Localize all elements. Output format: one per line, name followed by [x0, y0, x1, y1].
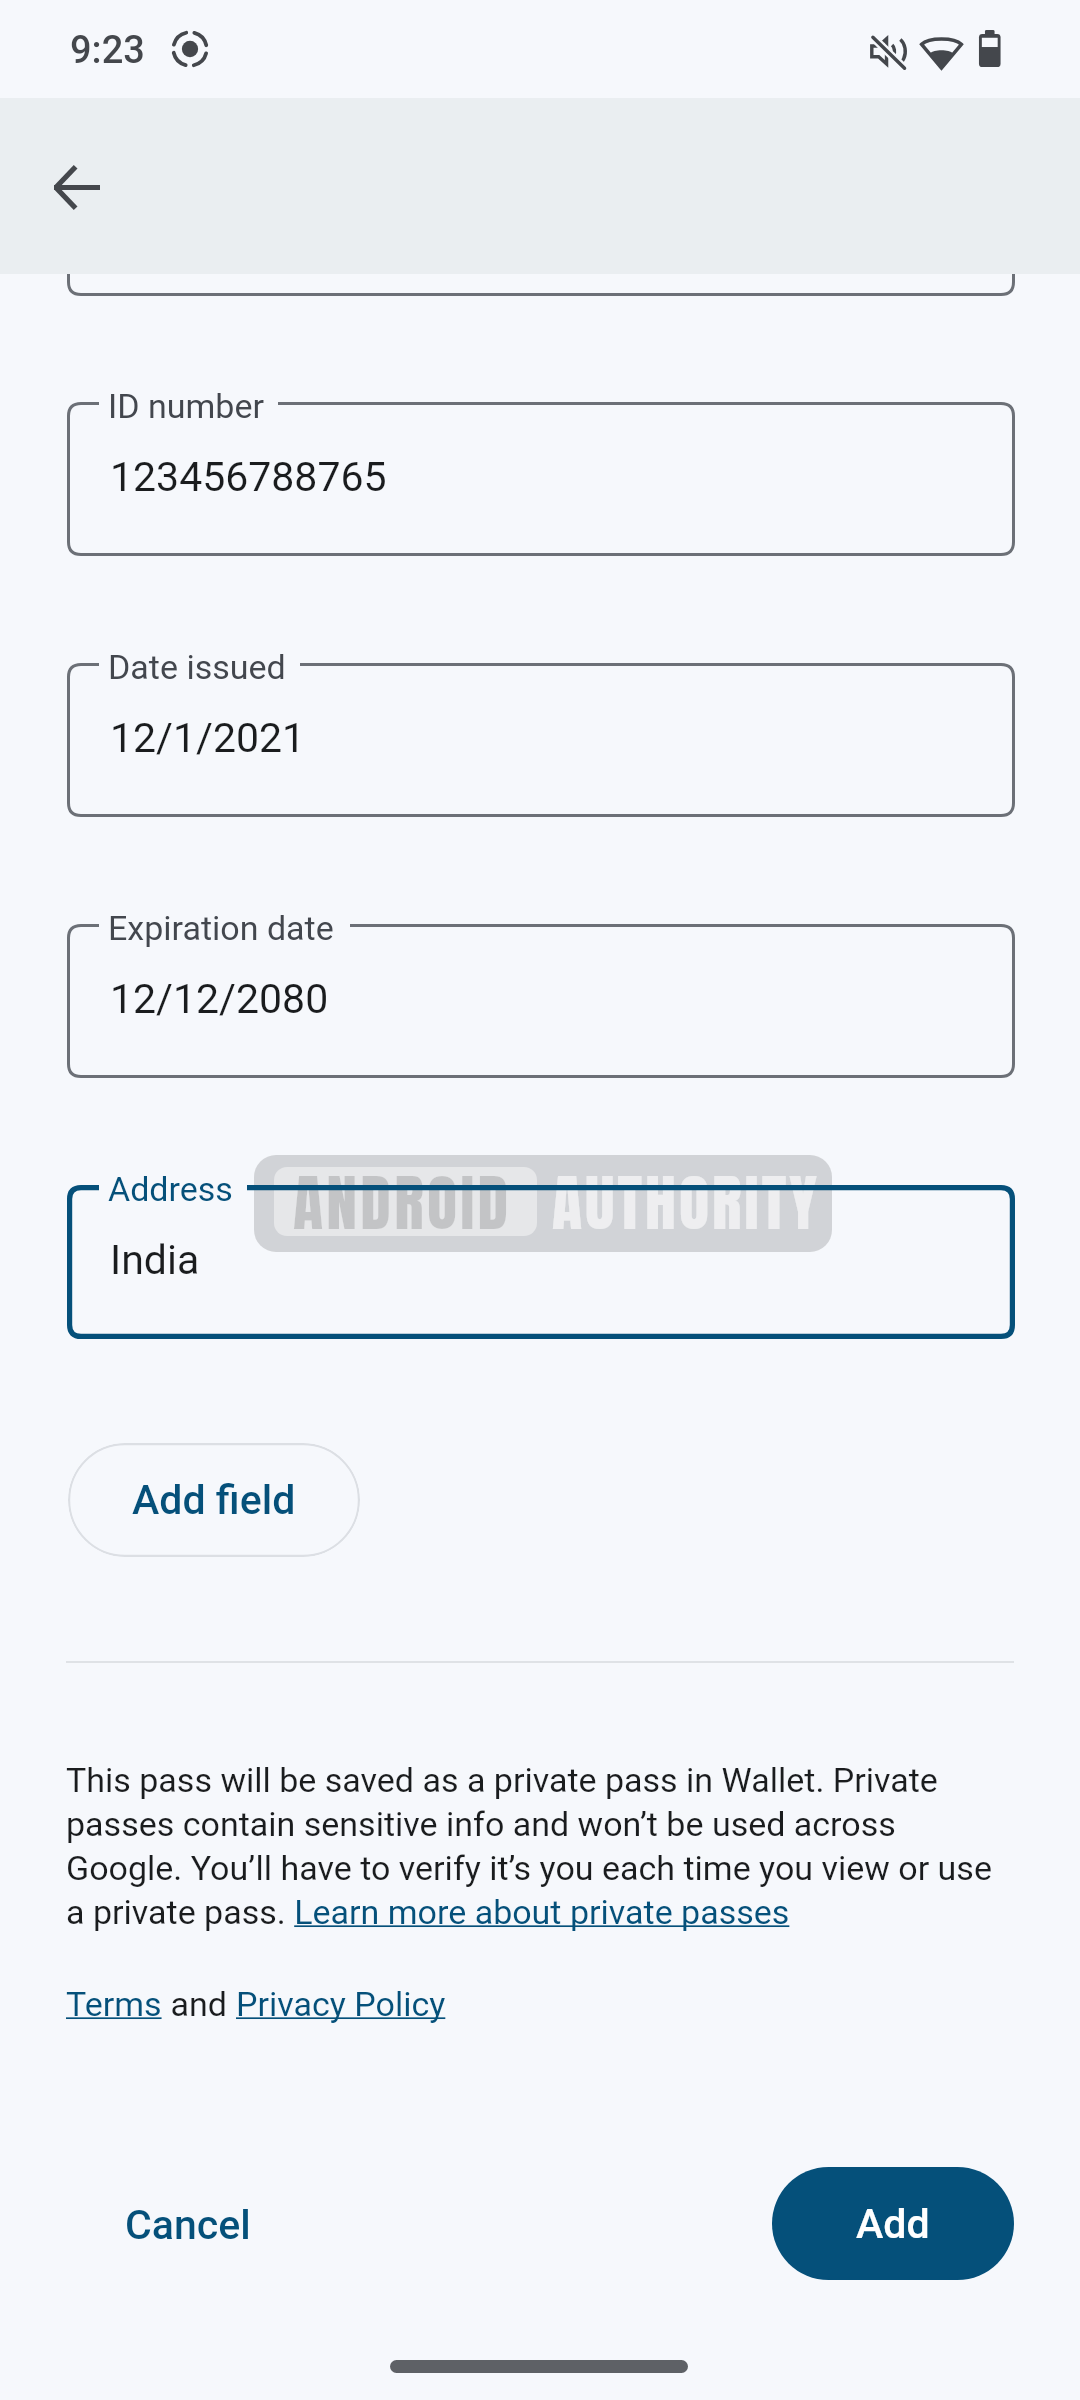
button[interactable]: Learn more about private passes [289, 1892, 794, 1938]
staticText: Add field [132, 1476, 296, 1524]
staticText: Terms [66, 1984, 162, 2024]
staticText: Expiration date [108, 908, 334, 948]
button[interactable]: Date issued [67, 663, 1015, 817]
button[interactable]: Cancel [100, 2168, 275, 2281]
staticText: ANDROID [293, 1156, 512, 1249]
button[interactable]: Back [22, 132, 132, 242]
staticText: and [162, 1984, 236, 2024]
staticText: 12/12/2080 [110, 975, 329, 1023]
button[interactable]: Add field [68, 1443, 360, 1557]
staticText: Address [108, 1169, 233, 1209]
button[interactable]: Terms [66, 1984, 162, 2024]
staticText: This pass will be saved as a private pas… [66, 1760, 1006, 1932]
staticText: Cancel [125, 2201, 251, 2249]
staticText: Add [856, 2200, 930, 2248]
button[interactable]: Add [772, 2167, 1014, 2280]
button[interactable]: Expiration date [67, 924, 1015, 1078]
staticText: 9:23 [70, 28, 145, 73]
staticText: AUTHORITY [552, 1156, 820, 1249]
staticText: 123456788765 [110, 453, 387, 501]
staticText: 12/1/2021 [110, 714, 306, 762]
button[interactable]: Address [67, 1185, 1015, 1339]
button[interactable]: ID number [67, 402, 1015, 556]
staticText: India [110, 1236, 200, 1284]
staticText: ID number [108, 386, 264, 426]
staticText: Date issued [108, 647, 286, 687]
staticText: Privacy Policy [236, 1984, 446, 2024]
button[interactable]: Privacy Policy [236, 1984, 446, 2024]
